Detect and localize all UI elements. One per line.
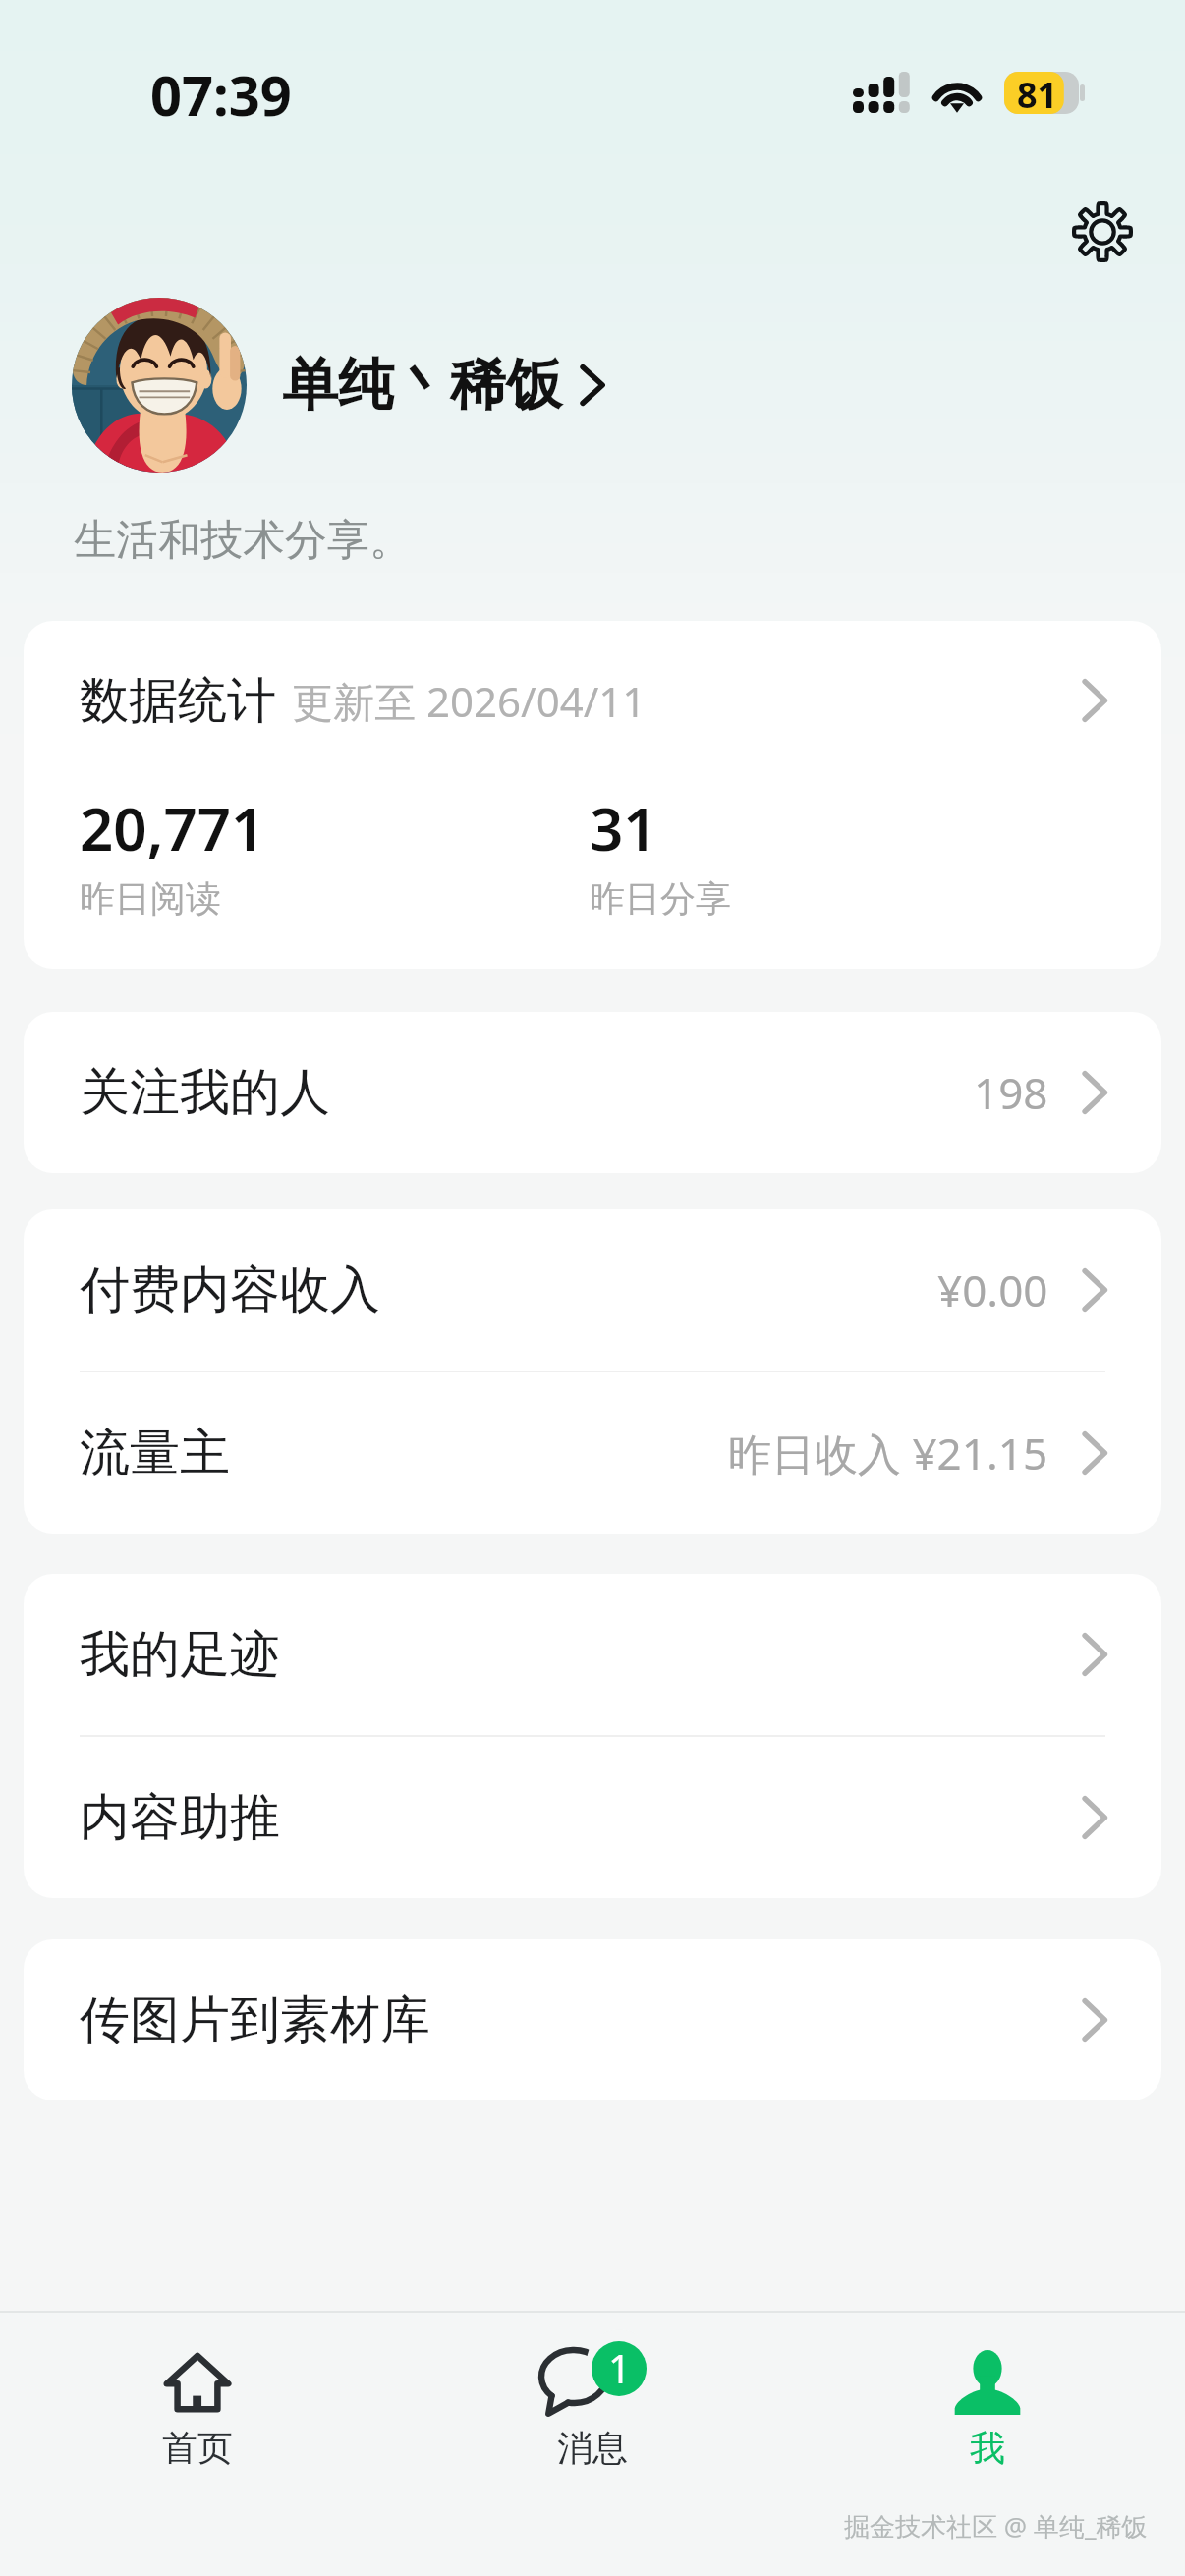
button[interactable]: 付费内容收入: [24, 1209, 1161, 1371]
button[interactable]: 1: [395, 2313, 790, 2470]
staticText: ¥0.00: [937, 1260, 1048, 1319]
staticText: 付费内容收入: [80, 1259, 380, 1321]
staticText: 传图片到素材库: [80, 1988, 430, 2051]
staticText: 内容助推: [80, 1786, 280, 1849]
staticText: 20,771: [80, 788, 265, 868]
staticText: 昨日收入 ¥21.15: [728, 1424, 1048, 1483]
staticText: 我: [970, 2426, 1005, 2470]
staticText: 昨日分享: [590, 876, 731, 921]
button[interactable]: 单纯丶稀饭: [72, 298, 1185, 473]
staticText: 流量主: [80, 1422, 230, 1484]
staticText: 掘金技术社区 @ 单纯_稀饭: [844, 2508, 1148, 2544]
staticText: 31: [590, 788, 657, 868]
staticText: 消息: [557, 2426, 628, 2470]
button[interactable]: 内容助推: [24, 1737, 1161, 1898]
staticText: 单纯丶稀饭: [282, 350, 562, 420]
staticText: 首页: [162, 2426, 233, 2470]
staticText: 81: [1017, 71, 1058, 113]
staticText: 关注我的人: [80, 1061, 330, 1124]
staticText: 我的足迹: [80, 1623, 280, 1686]
button[interactable]: Settings: [1063, 193, 1142, 271]
button[interactable]: 关注我的人: [24, 1012, 1161, 1173]
button[interactable]: 传图片到素材库: [24, 1939, 1161, 2100]
button[interactable]: 流量主: [24, 1372, 1161, 1534]
staticText: 数据统计: [80, 670, 276, 732]
staticText: 198: [974, 1063, 1048, 1122]
button[interactable]: 我的足迹: [24, 1574, 1161, 1735]
staticText: 1: [608, 2341, 631, 2394]
staticText: 更新至 2026/04/11: [292, 673, 647, 729]
button[interactable]: 首页: [0, 2313, 395, 2470]
staticText: 07:39: [150, 57, 292, 132]
staticText: 昨日阅读: [80, 876, 221, 921]
button[interactable]: 数据统计: [24, 621, 1161, 780]
staticText: 生活和技术分享。: [74, 514, 412, 567]
button[interactable]: 我: [790, 2313, 1185, 2470]
